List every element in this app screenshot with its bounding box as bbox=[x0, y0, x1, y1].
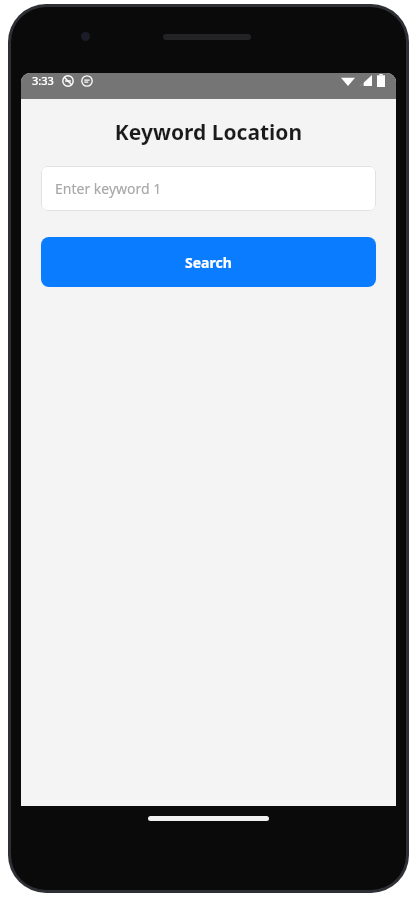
button[interactable]: Search bbox=[41, 237, 376, 287]
staticText: Enter keyword 1 bbox=[55, 179, 162, 198]
staticText: 3:33 bbox=[32, 73, 54, 88]
staticText: Search bbox=[185, 253, 232, 272]
button[interactable]: Enter keyword 1 bbox=[41, 166, 376, 211]
staticText: Keyword Location bbox=[21, 118, 396, 147]
